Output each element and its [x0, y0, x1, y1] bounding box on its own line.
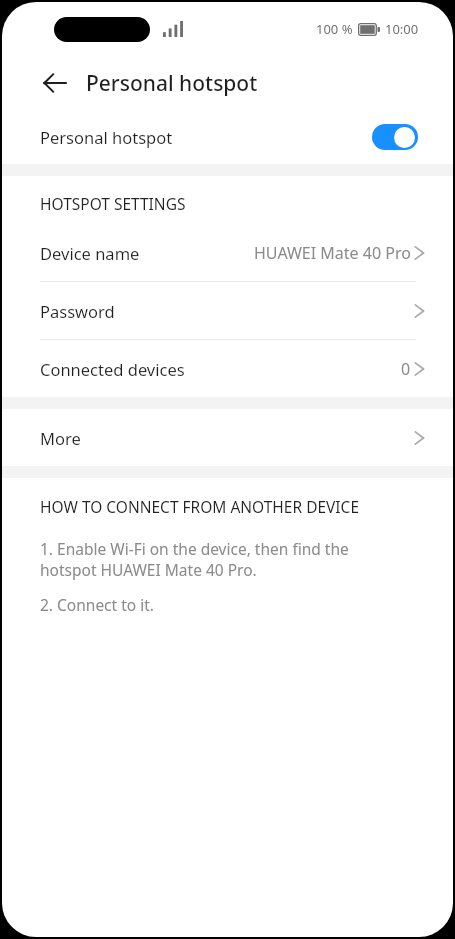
staticText: HOTSPOT SETTINGS — [40, 193, 186, 214]
button[interactable]: More — [2, 409, 453, 466]
button[interactable]: Back — [32, 60, 78, 106]
staticText: Personal hotspot — [40, 126, 372, 148]
button[interactable]: Device name — [2, 224, 453, 281]
staticText: 1. Enable Wi-Fi on the device, then find… — [40, 538, 405, 581]
staticText: Device name — [40, 242, 140, 264]
staticText: HUAWEI Mate 40 Pro — [254, 242, 411, 264]
staticText: More — [40, 427, 81, 449]
button[interactable]: Connected devices — [2, 340, 453, 397]
staticText: Password — [40, 300, 115, 322]
staticText: 2. Connect to it. — [40, 594, 154, 615]
staticText: Connected devices — [40, 358, 185, 380]
staticText: 10:00 — [385, 20, 419, 38]
button[interactable]: Password — [2, 282, 453, 339]
staticText: 0 — [401, 358, 411, 380]
staticText: HOW TO CONNECT FROM ANOTHER DEVICE — [40, 496, 360, 517]
staticText: Personal hotspot — [86, 69, 258, 98]
button[interactable]: Personal hotspot — [2, 110, 453, 164]
staticText: 100 % — [316, 20, 353, 38]
